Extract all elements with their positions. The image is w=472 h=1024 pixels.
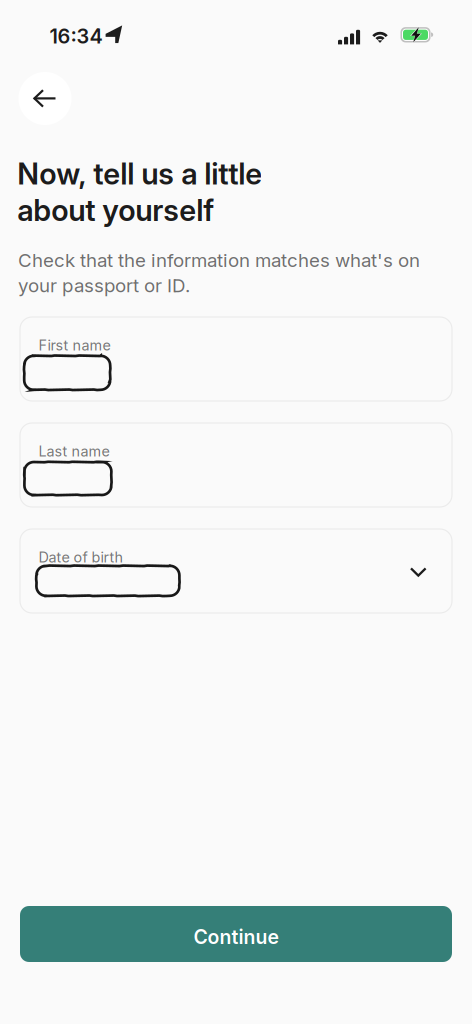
button[interactable]: First name	[20, 317, 452, 401]
staticText: Date of birth	[38, 549, 123, 566]
staticText: Last name	[38, 443, 109, 460]
button[interactable]: Last name	[20, 423, 452, 507]
staticText: Continue	[193, 925, 278, 949]
button[interactable]: Date of birth	[20, 529, 452, 613]
staticText: Now, tell us a little about yourself	[17, 156, 262, 228]
staticText: Check that the information matches what'…	[18, 249, 420, 297]
staticText: First name	[38, 337, 110, 354]
staticText: 16:34	[49, 24, 102, 48]
button[interactable]: Back	[18, 72, 71, 125]
button[interactable]: Continue	[20, 906, 452, 962]
